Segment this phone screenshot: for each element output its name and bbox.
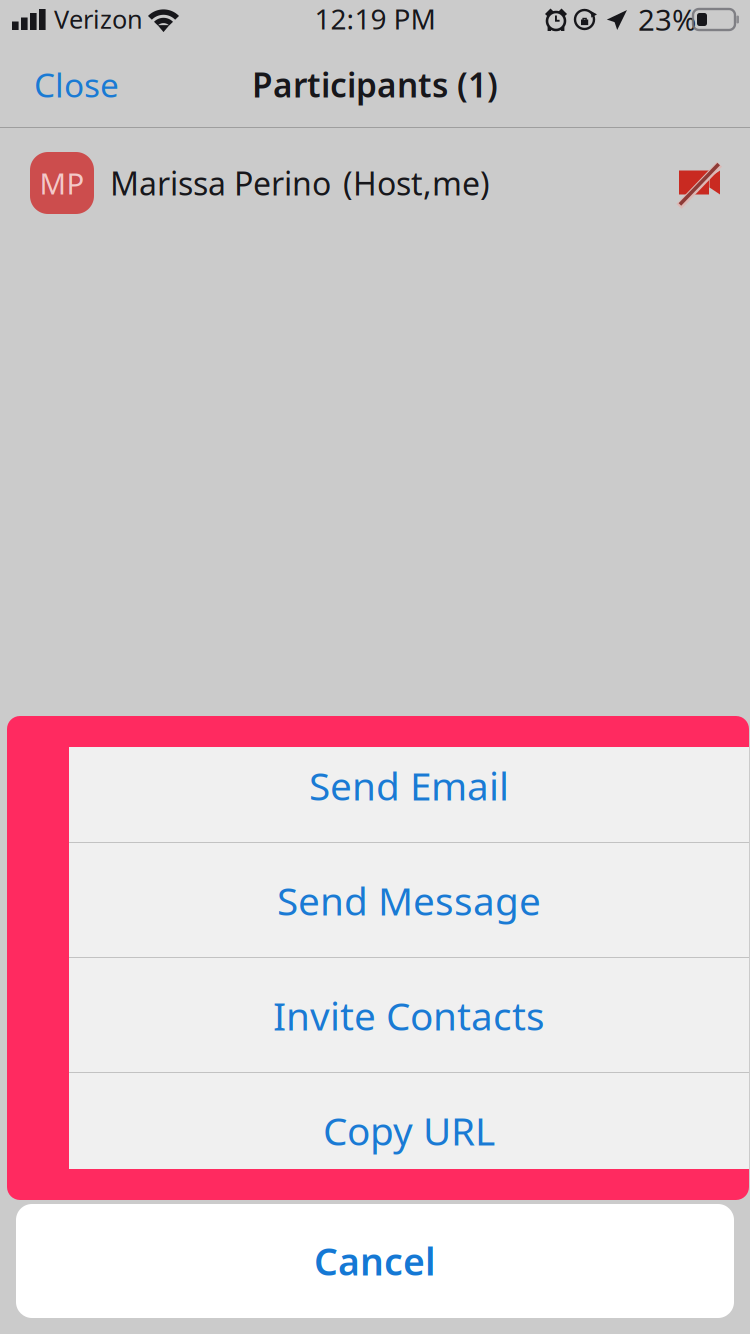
staticText: MP: [39, 163, 84, 202]
staticText: Verizon: [54, 2, 143, 36]
button[interactable]: Send Email: [50, 728, 750, 843]
button[interactable]: Close: [18, 50, 135, 119]
staticText: 23%: [638, 0, 696, 39]
staticText: Marissa Perino: [110, 162, 331, 204]
button[interactable]: Copy URL: [50, 1073, 750, 1188]
staticText: 12:19 PM: [314, 0, 435, 37]
staticText: Copy URL: [323, 1105, 495, 1156]
button[interactable]: Cancel: [16, 1204, 734, 1318]
staticText: (Host,me): [343, 162, 490, 204]
staticText: Close: [34, 62, 119, 107]
staticText: Send Email: [309, 760, 509, 811]
button[interactable]: Send Message: [50, 843, 750, 958]
button[interactable]: Invite Contacts: [50, 958, 750, 1073]
staticText: Send Message: [277, 875, 541, 926]
staticText: Cancel: [314, 1236, 436, 1286]
staticText: Participants (1): [252, 62, 498, 107]
staticText: Invite Contacts: [273, 990, 545, 1041]
